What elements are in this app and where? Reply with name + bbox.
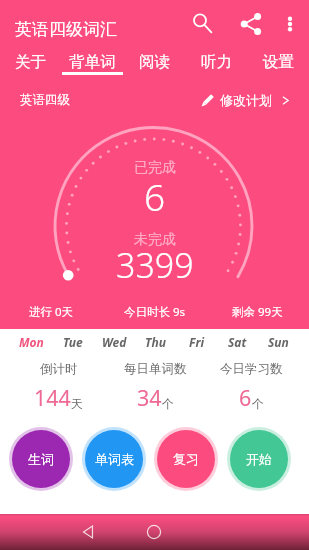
staticText: 今日学习数: [220, 361, 283, 377]
staticText: 开始: [246, 451, 272, 467]
button[interactable]: 生词: [9, 427, 73, 491]
staticText: Tue: [63, 334, 83, 350]
staticText: 天: [71, 396, 83, 411]
button[interactable]: Back: [68, 514, 108, 550]
staticText: 倒计时: [40, 361, 78, 377]
staticText: 6: [239, 383, 252, 412]
staticText: 34: [137, 383, 162, 412]
staticText: Thu: [145, 334, 166, 350]
button[interactable]: Home: [134, 514, 174, 550]
button[interactable]: 复习: [154, 427, 218, 491]
button[interactable]: Share: [231, 4, 271, 44]
button[interactable]: Mon: [10, 331, 52, 353]
staticText: 听力: [201, 52, 232, 72]
button[interactable]: 修改计划: [201, 92, 290, 108]
button[interactable]: Tue: [52, 331, 94, 353]
staticText: 关于: [15, 52, 46, 72]
staticText: Mon: [19, 334, 44, 350]
staticText: 3399: [116, 242, 194, 288]
button[interactable]: 设置: [247, 48, 309, 78]
staticText: 今日时长 9s: [124, 304, 186, 320]
staticText: 英语四级: [20, 92, 70, 108]
staticText: 已完成: [134, 159, 176, 177]
button[interactable]: 听力: [185, 48, 247, 78]
button[interactable]: 阅读: [123, 48, 185, 78]
staticText: 6: [144, 171, 166, 221]
staticText: 英语四级词汇: [15, 19, 117, 40]
button[interactable]: Search: [182, 3, 222, 43]
staticText: Wed: [102, 334, 127, 350]
staticText: 未完成: [134, 231, 176, 249]
staticText: Sat: [228, 334, 247, 350]
staticText: 进行 0天: [29, 304, 74, 320]
button[interactable]: Fri: [176, 331, 217, 353]
button[interactable]: 单词表: [82, 427, 146, 491]
staticText: 单词表: [95, 451, 134, 467]
staticText: 生词: [28, 451, 54, 467]
button[interactable]: 开始: [227, 427, 291, 491]
button[interactable]: 背单词: [61, 48, 123, 78]
staticText: 复习: [173, 451, 199, 467]
staticText: 背单词: [69, 52, 116, 72]
staticText: 剩余 99天: [232, 304, 283, 320]
staticText: Sun: [268, 334, 289, 350]
staticText: 每日单词数: [124, 361, 187, 377]
staticText: Fri: [189, 334, 205, 350]
button[interactable]: Sat: [217, 331, 258, 353]
staticText: 144: [34, 383, 71, 412]
staticText: 设置: [263, 52, 294, 72]
button[interactable]: Thu: [135, 331, 176, 353]
button[interactable]: More options: [272, 6, 308, 42]
button[interactable]: Sun: [258, 331, 299, 353]
staticText: 个: [252, 396, 264, 411]
button[interactable]: Wed: [94, 331, 135, 353]
staticText: 阅读: [139, 52, 170, 72]
staticText: 修改计划: [220, 92, 272, 108]
button[interactable]: 关于: [0, 48, 61, 78]
staticText: 个: [162, 396, 174, 411]
